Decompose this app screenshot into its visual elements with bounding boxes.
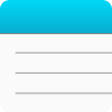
button[interactable]: Notes bbox=[0, 0, 112, 33]
button[interactable]: Note 2 bbox=[0, 71, 112, 91]
button[interactable]: Note 3 bbox=[0, 91, 112, 111]
button[interactable]: Note 1 bbox=[0, 51, 112, 71]
